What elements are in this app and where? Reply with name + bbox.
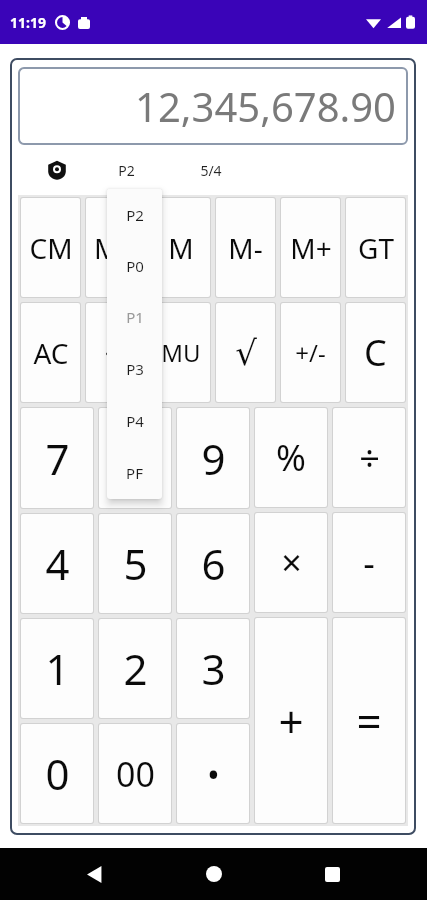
staticText: 4 [45, 535, 70, 592]
staticText: P3 [126, 359, 144, 379]
staticText: - [363, 538, 375, 587]
staticText: +/- [295, 336, 326, 369]
button[interactable]: 6 [177, 514, 249, 613]
staticText: MU [161, 336, 201, 369]
button[interactable]: PF [107, 447, 162, 499]
button[interactable]: P1 [107, 291, 162, 343]
staticText: P0 [126, 256, 144, 276]
staticText: + [278, 691, 304, 751]
button[interactable]: 5/4 [200, 161, 222, 180]
staticText: 0 [45, 745, 70, 802]
button[interactable]: 1 [21, 619, 93, 718]
staticText: 2 [123, 640, 148, 697]
button[interactable]: AC [21, 303, 80, 402]
staticText: • [207, 751, 220, 797]
staticText: P2 [126, 205, 144, 225]
staticText: P4 [126, 411, 144, 431]
staticText: PF [126, 463, 143, 483]
button[interactable]: 9 [177, 408, 249, 508]
staticText: 8 [123, 430, 148, 487]
button[interactable]: 5 [99, 514, 171, 613]
staticText: P2 [118, 161, 135, 180]
staticText: 12,345,678.90 [135, 79, 396, 133]
button[interactable]: ÷ [333, 408, 405, 507]
staticText: 6 [201, 535, 226, 592]
button[interactable]: 0 [21, 724, 93, 823]
button[interactable]: P3 [107, 343, 162, 395]
button[interactable]: 8 [99, 408, 171, 508]
staticText: 11:19 [10, 13, 46, 32]
button[interactable]: Settings [46, 159, 68, 181]
staticText: × [281, 538, 302, 587]
button[interactable]: MU [151, 303, 210, 402]
button[interactable]: Back [71, 850, 119, 898]
button[interactable]: % [255, 408, 327, 507]
button[interactable]: 3 [177, 619, 249, 718]
staticText: 5 [123, 535, 148, 592]
button[interactable]: × [255, 513, 327, 612]
staticText: CM [29, 229, 73, 267]
staticText: % [276, 433, 306, 482]
button[interactable]: Recent apps [308, 850, 356, 898]
staticText: 1 [45, 640, 70, 697]
staticText: √ [235, 333, 257, 373]
staticText: P1 [126, 307, 144, 327]
staticText: MR [94, 229, 137, 267]
button[interactable]: M [151, 198, 210, 297]
button[interactable]: ← [86, 303, 145, 402]
button[interactable]: CM [21, 198, 80, 297]
button[interactable]: √ [216, 303, 275, 402]
button[interactable]: P0 [107, 240, 162, 291]
button[interactable]: Home [190, 850, 238, 898]
button[interactable]: 2 [99, 619, 171, 718]
staticText: 00 [116, 751, 155, 797]
staticText: 9 [201, 430, 226, 487]
staticText: ÷ [359, 433, 380, 482]
staticText: 5/4 [200, 161, 222, 180]
button[interactable]: - [333, 513, 405, 612]
button[interactable]: P2 [107, 189, 162, 240]
button[interactable]: GT [346, 198, 405, 297]
staticText: 3 [201, 640, 226, 697]
button[interactable]: MR [86, 198, 145, 297]
button[interactable]: = [333, 618, 405, 823]
button[interactable]: C [346, 303, 405, 402]
staticText: = [356, 691, 382, 751]
staticText: GT [358, 229, 394, 267]
staticText: M [168, 229, 194, 267]
button[interactable]: + [255, 618, 327, 823]
staticText: M- [228, 229, 263, 267]
button[interactable]: M+ [281, 198, 340, 297]
button[interactable]: P2 [118, 161, 135, 180]
button[interactable]: 7 [21, 408, 93, 508]
staticText: ← [105, 338, 127, 368]
staticText: 7 [45, 430, 70, 487]
staticText: C [364, 328, 387, 377]
staticText: AC [33, 334, 69, 372]
staticText: M+ [290, 229, 332, 267]
button[interactable]: 4 [21, 514, 93, 613]
button[interactable]: 00 [99, 724, 171, 823]
button[interactable]: P4 [107, 395, 162, 447]
button[interactable]: +/- [281, 303, 340, 402]
button[interactable]: • [177, 724, 249, 823]
button[interactable]: M- [216, 198, 275, 297]
